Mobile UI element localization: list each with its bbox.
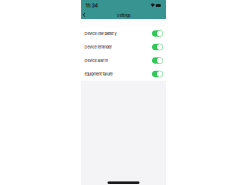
button[interactable]: Device reminder <box>81 40 166 54</box>
staticText: Device low battery <box>84 31 116 36</box>
staticText: Device alarm <box>84 58 107 63</box>
staticText: 11:34 <box>85 2 98 9</box>
button[interactable]: Device low battery <box>81 27 166 40</box>
staticText: Equipment failure <box>84 72 112 76</box>
staticText: Settings <box>116 13 130 18</box>
button[interactable]: Back <box>82 12 87 17</box>
button[interactable]: Equipment failure <box>81 67 166 81</box>
button[interactable]: Device alarm <box>81 54 166 67</box>
staticText: Device reminder <box>84 45 111 49</box>
